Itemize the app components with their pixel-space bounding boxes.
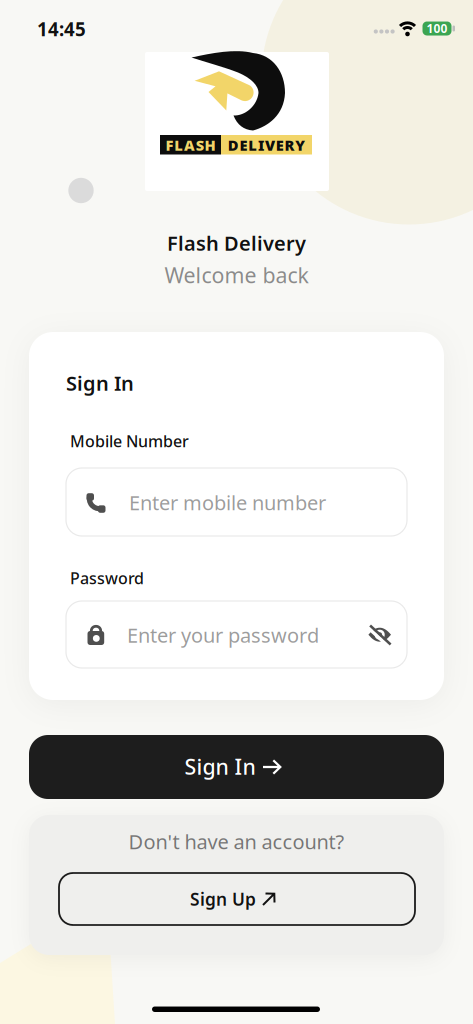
staticText: Enter your password xyxy=(127,622,319,648)
staticText: DELIVERY xyxy=(228,135,305,155)
staticText: 14:45 xyxy=(37,17,86,41)
button[interactable]: Show password xyxy=(360,615,400,655)
button[interactable]: Sign Up xyxy=(59,873,415,925)
staticText: Sign In xyxy=(184,752,255,781)
staticText: Mobile Number xyxy=(70,430,189,452)
button[interactable]: Enter mobile number xyxy=(66,468,407,536)
staticText: Sign Up xyxy=(190,887,256,910)
button[interactable]: Enter your password xyxy=(66,601,407,668)
staticText: Welcome back xyxy=(164,261,308,289)
staticText: Password xyxy=(70,567,144,589)
staticText: Flash Delivery xyxy=(167,230,306,256)
staticText: Don't have an account? xyxy=(128,828,344,855)
staticText: FLASH xyxy=(165,135,216,155)
staticText: 100 xyxy=(426,20,447,36)
staticText: Sign In xyxy=(66,370,134,396)
button[interactable]: Sign In xyxy=(29,735,444,799)
staticText: Enter mobile number xyxy=(129,489,326,516)
